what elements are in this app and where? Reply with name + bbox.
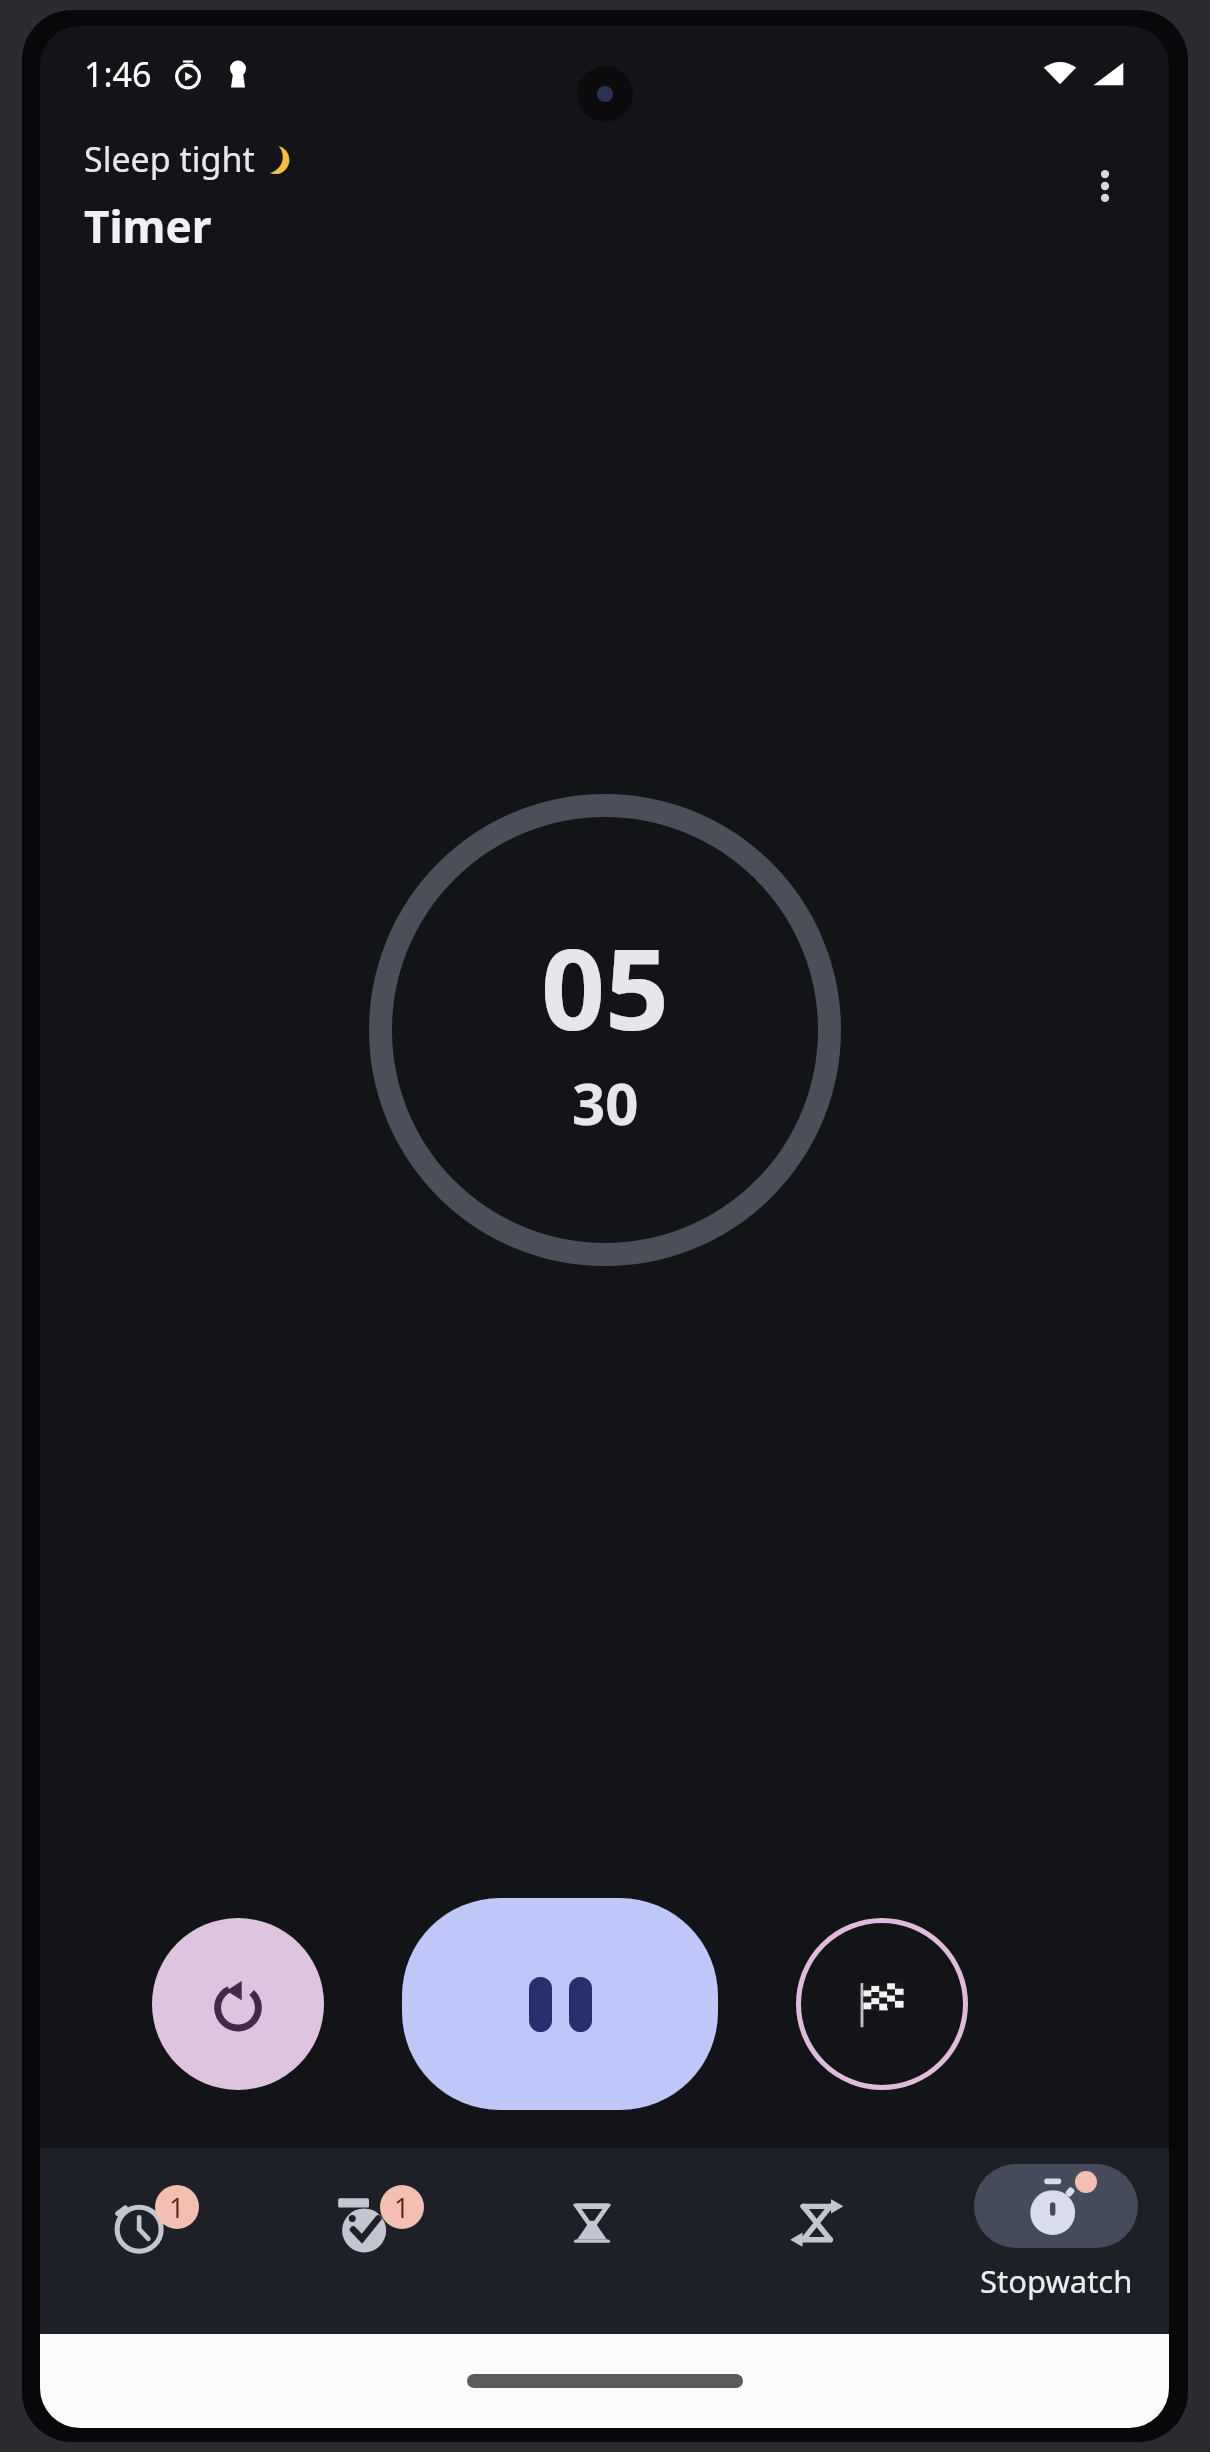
button[interactable]: More options [1061, 142, 1149, 230]
staticText: 05 [541, 910, 670, 1063]
button[interactable]: Timer [491, 2148, 717, 2334]
button[interactable]: Pause [402, 1898, 718, 2110]
staticText: 30 [572, 1063, 639, 1142]
staticText: Sleep tight [84, 136, 255, 182]
staticText: 1 [169, 2189, 185, 2226]
button[interactable]: Lap [796, 1918, 968, 2090]
button[interactable]: Reset [152, 1918, 324, 2090]
button[interactable]: Bedtime [265, 2148, 491, 2334]
button[interactable]: Stopwatch [943, 2148, 1169, 2334]
button[interactable]: Alarm [40, 2148, 265, 2334]
staticText: 1:46 [84, 51, 152, 97]
staticText: 1 [394, 2189, 410, 2226]
button[interactable]: 05 [369, 794, 841, 1266]
staticText: Stopwatch [980, 2260, 1133, 2302]
staticText: Timer [84, 196, 212, 256]
button[interactable]: Interval [717, 2148, 943, 2334]
